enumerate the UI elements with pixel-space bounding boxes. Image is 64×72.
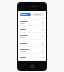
button[interactable]: Favorite bbox=[18, 54, 46, 60]
button[interactable]: Favorite bbox=[40, 34, 44, 38]
button[interactable]: Favorite bbox=[40, 41, 44, 45]
button[interactable]: Favorite bbox=[40, 48, 44, 52]
button[interactable]: Favorite bbox=[18, 19, 46, 25]
button[interactable]: Favorite bbox=[40, 55, 44, 59]
button[interactable]: Favorite bbox=[18, 47, 46, 53]
button[interactable]: Favorite bbox=[18, 40, 46, 46]
button[interactable]: Favorite bbox=[18, 33, 46, 39]
button[interactable]: Favorite bbox=[40, 20, 44, 24]
button[interactable] bbox=[32, 13, 44, 16]
button[interactable]: Favorite bbox=[18, 26, 46, 32]
button[interactable] bbox=[20, 13, 31, 16]
button[interactable]: Favorite bbox=[40, 27, 44, 31]
